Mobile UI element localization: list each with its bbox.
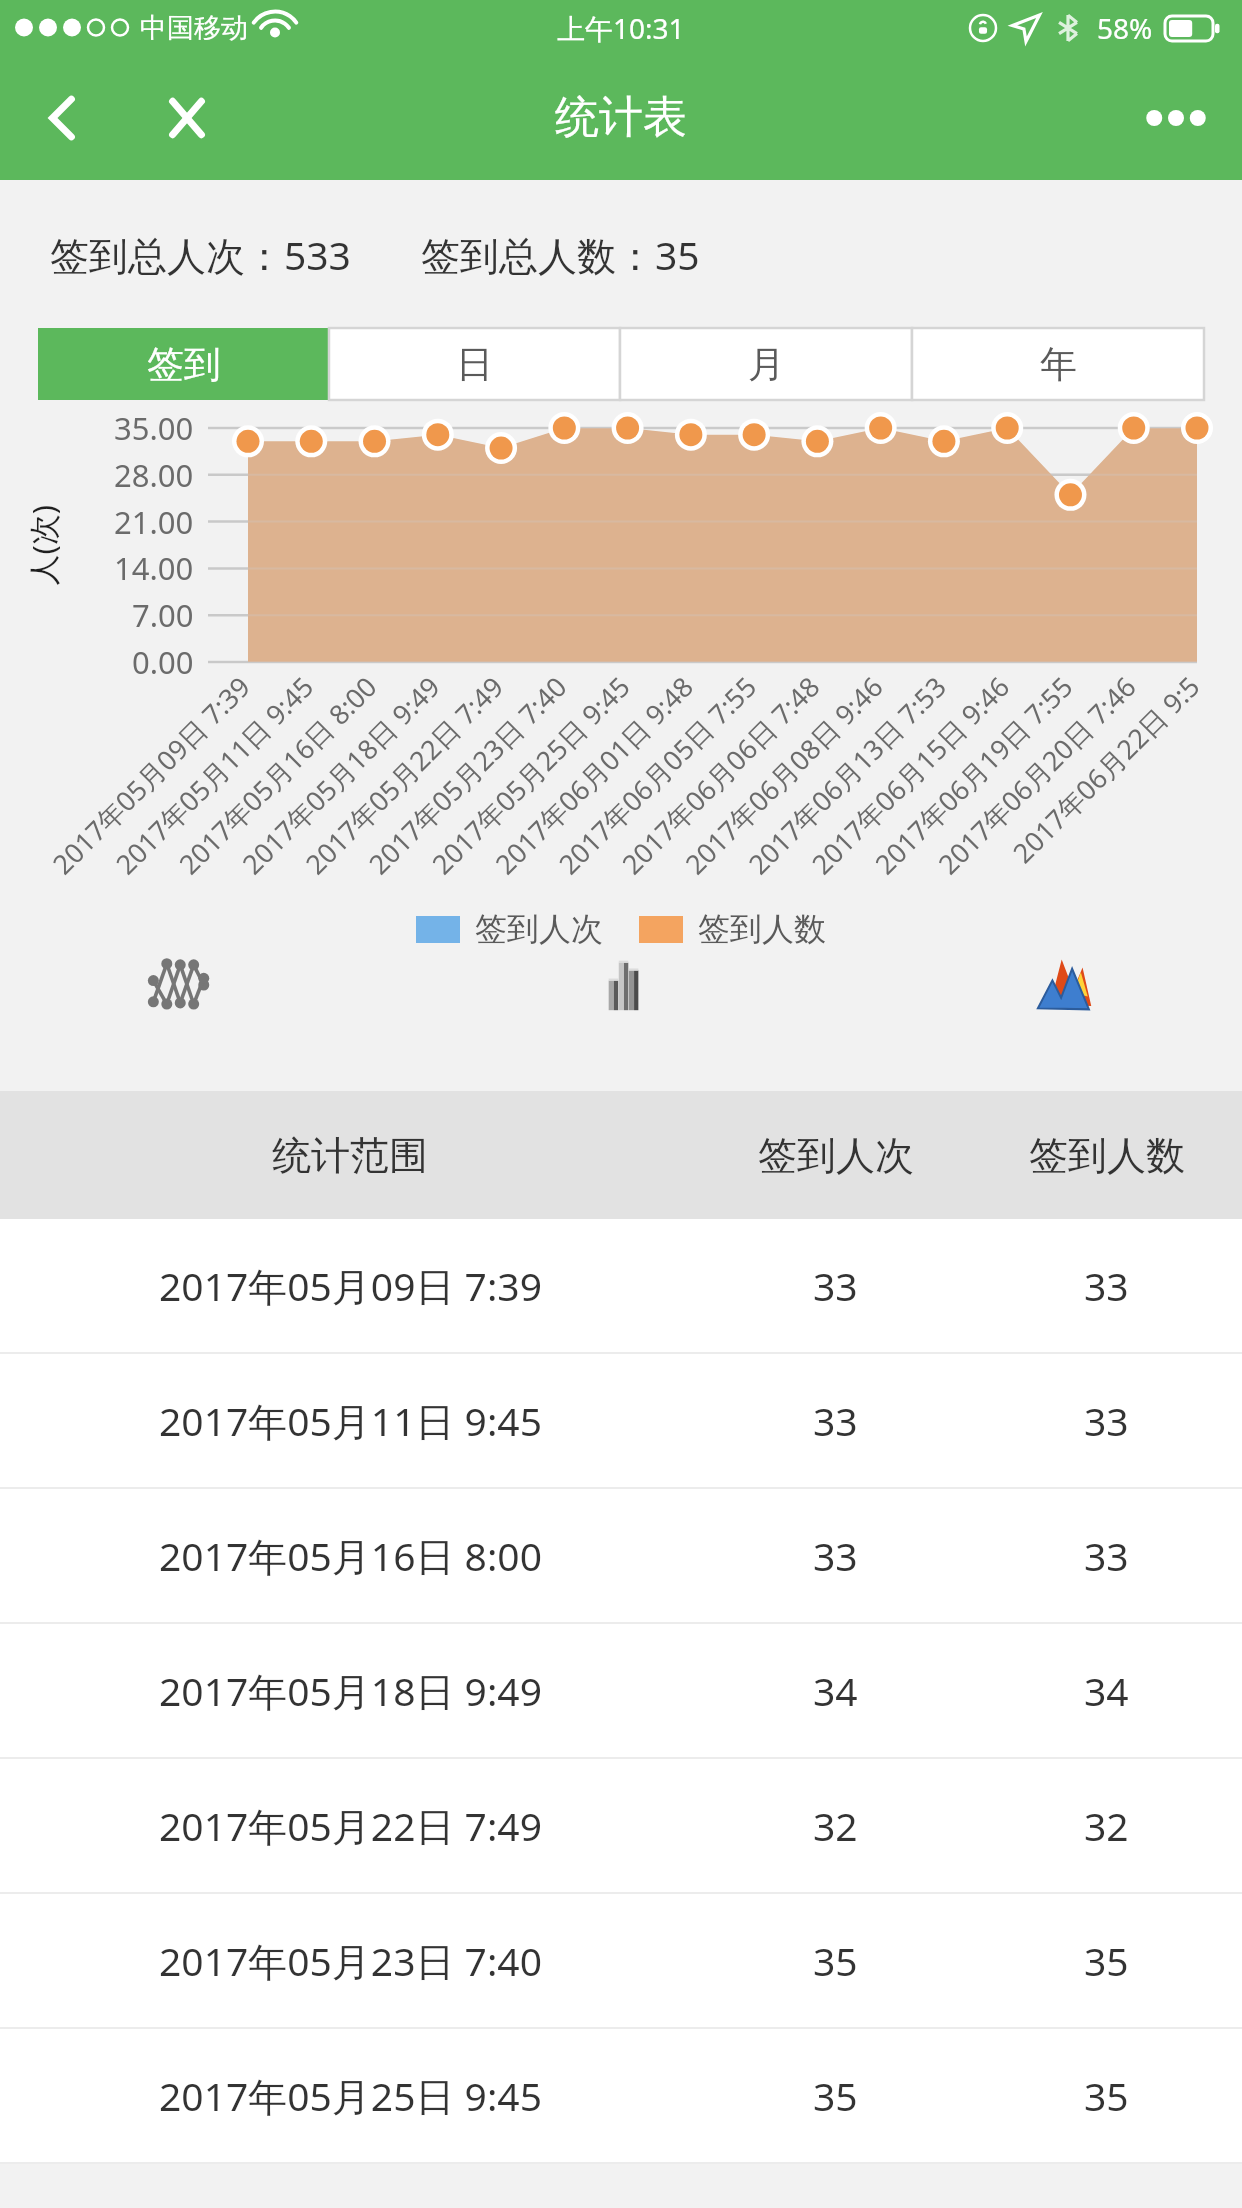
staticText: 33 — [1084, 1259, 1129, 1312]
button[interactable]: 月 — [620, 328, 912, 400]
staticText: 签到人次 — [475, 909, 603, 949]
staticText: 签到总人次：533 — [50, 228, 351, 281]
staticText: 32 — [1084, 1799, 1129, 1852]
button[interactable]: 2017年05月11日 9:45 — [0, 1354, 1242, 1487]
staticText: 34 — [1084, 1664, 1129, 1717]
staticText: 2017年05月23日 7:40 — [159, 1934, 542, 1987]
button[interactable]: 日 — [329, 328, 620, 400]
button[interactable]: 2017年05月16日 8:00 — [0, 1489, 1242, 1622]
staticText: 33 — [1084, 1394, 1129, 1447]
button[interactable]: Back — [24, 79, 102, 157]
button[interactable]: Bar chart — [573, 937, 669, 1033]
button[interactable]: Close — [148, 79, 226, 157]
button[interactable]: 2017年05月18日 9:49 — [0, 1624, 1242, 1757]
button[interactable]: More options — [1130, 72, 1222, 164]
staticText: 上午10:31 — [557, 9, 685, 47]
button[interactable]: 2017年05月09日 7:39 — [0, 1219, 1242, 1352]
staticText: 35 — [813, 1934, 858, 1987]
staticText: 签到人次 — [758, 1131, 914, 1180]
button[interactable]: 2017年05月23日 7:40 — [0, 1894, 1242, 2027]
staticText: 35 — [813, 2069, 858, 2122]
staticText: 签到人数 — [1029, 1131, 1185, 1180]
staticText: 33 — [1084, 1529, 1129, 1582]
staticText: 2017年05月09日 7:39 — [159, 1259, 542, 1312]
staticText: 签到人数 — [698, 909, 826, 949]
button[interactable]: 2017年05月22日 7:49 — [0, 1759, 1242, 1892]
staticText: 32 — [813, 1799, 858, 1852]
staticText: 33 — [813, 1394, 858, 1447]
button[interactable]: 签到 — [38, 328, 329, 400]
staticText: 中国移动 — [140, 11, 248, 45]
staticText: 34 — [813, 1664, 858, 1717]
button[interactable]: 年 — [912, 328, 1204, 400]
staticText: 33 — [813, 1259, 858, 1312]
staticText: 2017年05月16日 8:00 — [159, 1529, 542, 1582]
button[interactable]: 2017年05月25日 9:45 — [0, 2029, 1242, 2162]
button[interactable]: Area chart — [1016, 937, 1112, 1033]
staticText: 月 — [748, 341, 785, 388]
staticText: 2017年05月18日 9:49 — [159, 1664, 542, 1717]
staticText: 58% — [1097, 9, 1153, 47]
staticText: 日 — [456, 341, 493, 388]
staticText: 签到总人数：35 — [421, 228, 700, 281]
staticText: 统计范围 — [272, 1131, 428, 1180]
staticText: 2017年05月25日 9:45 — [159, 2069, 542, 2122]
staticText: 统计表 — [555, 90, 687, 145]
staticText: 35 — [1084, 1934, 1129, 1987]
staticText: 年 — [1040, 341, 1077, 388]
staticText: 2017年05月22日 7:49 — [159, 1799, 542, 1852]
staticText: 2017年05月11日 9:45 — [159, 1394, 542, 1447]
staticText: 35 — [1084, 2069, 1129, 2122]
staticText: 33 — [813, 1529, 858, 1582]
button[interactable]: Line chart — [130, 937, 226, 1033]
staticText: 签到 — [147, 341, 221, 388]
